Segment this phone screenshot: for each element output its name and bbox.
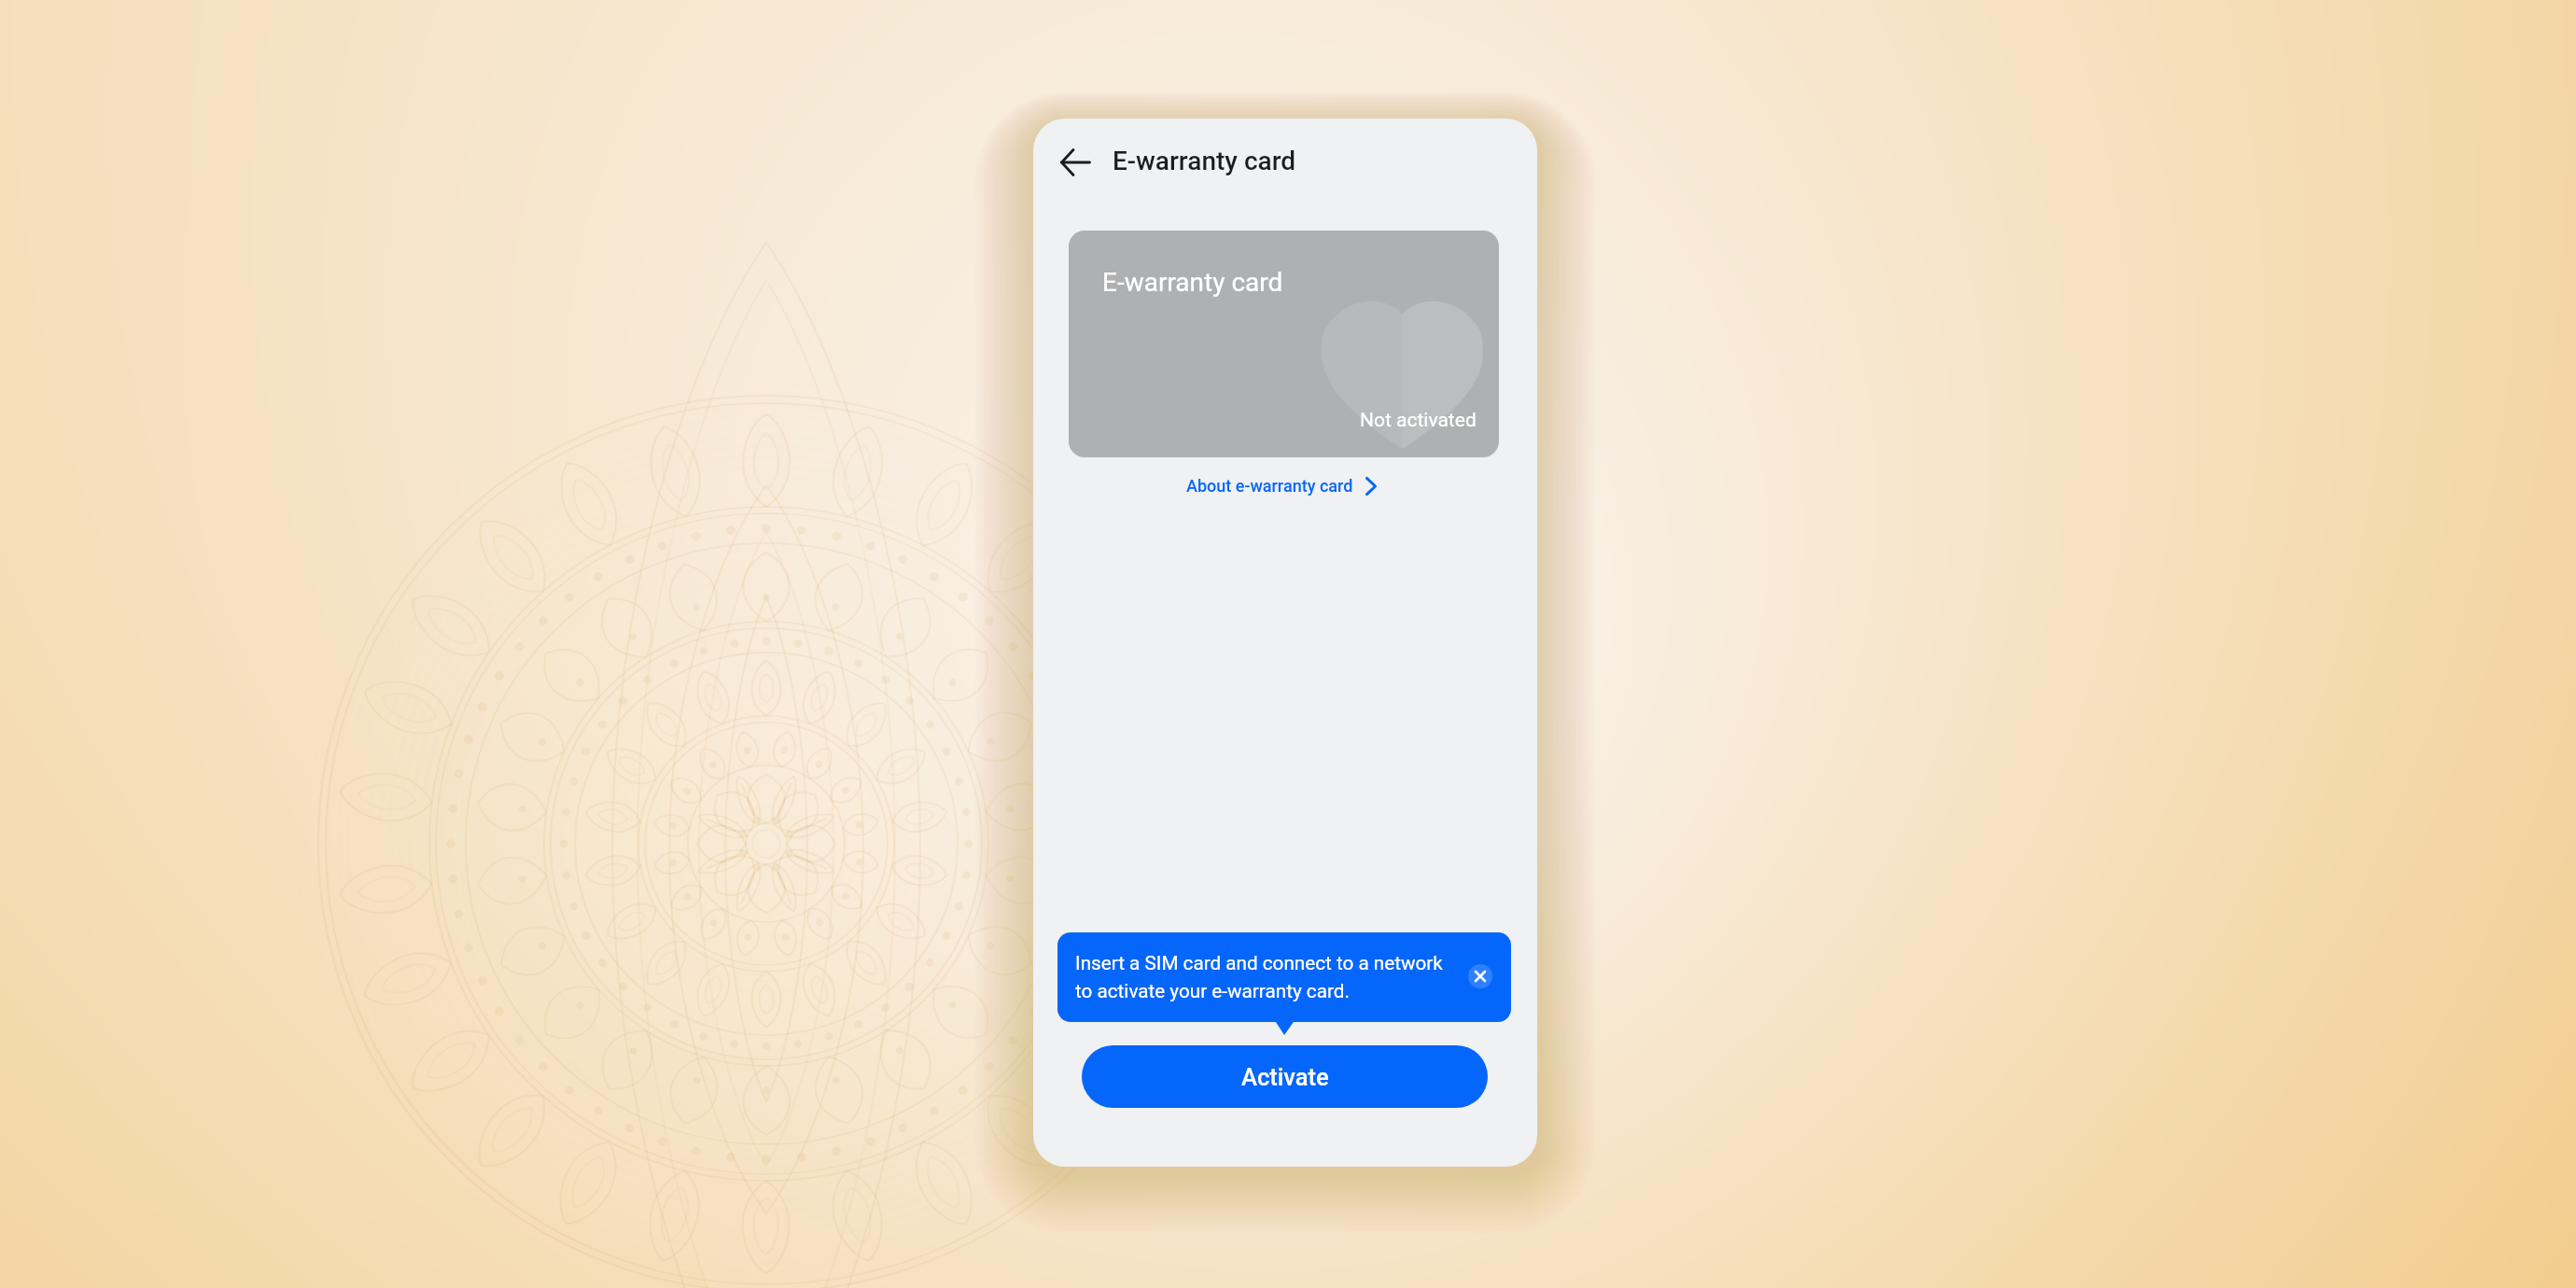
- staticText: E-warranty card: [1102, 267, 1283, 298]
- staticText: Activate: [1241, 1063, 1329, 1091]
- staticText: Not activated: [1360, 409, 1477, 432]
- button[interactable]: About e-warranty card: [1178, 469, 1385, 503]
- button[interactable]: Activate: [1082, 1045, 1488, 1108]
- button[interactable]: Insert a SIM card and connect to a netwo…: [1057, 932, 1511, 1022]
- staticText: Insert a SIM card and connect to a netwo…: [1075, 952, 1443, 1002]
- staticText: E-warranty card: [1113, 146, 1296, 176]
- button[interactable]: E-warranty card: [1069, 231, 1499, 457]
- staticText: About e-warranty card: [1186, 476, 1353, 496]
- button[interactable]: Close: [1468, 964, 1492, 988]
- button[interactable]: Back: [1058, 147, 1094, 178]
